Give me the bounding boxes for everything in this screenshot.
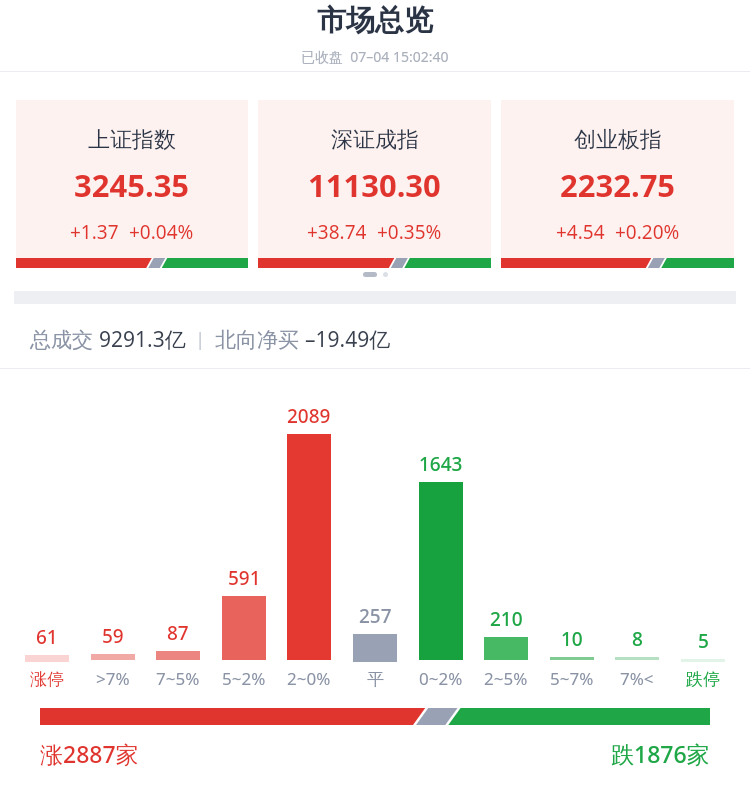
staticText: 2089	[287, 403, 331, 429]
staticText: +0.04%	[129, 219, 194, 245]
staticText: |	[186, 327, 215, 352]
staticText: +0.35%	[377, 219, 442, 245]
button[interactable]: 2089	[278, 403, 340, 690]
staticText: 跌停	[686, 669, 720, 690]
button[interactable]: 8	[606, 626, 668, 690]
staticText: 210	[490, 606, 523, 632]
button[interactable]: 1643	[410, 451, 472, 690]
staticText: 1643	[419, 451, 463, 477]
staticText: 0~2%	[419, 667, 463, 690]
button[interactable]: 257	[344, 603, 406, 690]
staticText: +4.54	[556, 219, 605, 245]
staticText: 7~5%	[156, 667, 200, 690]
staticText: +0.20%	[615, 219, 680, 245]
staticText: 11130.30	[308, 164, 441, 206]
staticText: 涨停	[30, 669, 64, 690]
staticText: 已收盘 07–04 15:02:40	[301, 47, 449, 66]
staticText: 3245.35	[74, 164, 190, 206]
button[interactable]: 210	[475, 606, 537, 690]
staticText: 市场总览	[317, 2, 433, 39]
staticText: 创业板指	[574, 126, 662, 154]
button[interactable]: 59	[82, 623, 144, 690]
staticText: 上证指数	[88, 126, 176, 154]
staticText: 61	[36, 624, 58, 650]
button[interactable]: 61	[16, 624, 78, 690]
staticText: 深证成指	[331, 126, 419, 154]
staticText: 总成交	[30, 325, 99, 354]
staticText: 跌1876家	[611, 738, 710, 769]
staticText: +38.74	[307, 219, 367, 245]
button[interactable]: 总成交	[0, 310, 750, 368]
staticText: 涨2887家	[40, 738, 139, 769]
button[interactable]: 87	[147, 620, 209, 690]
staticText: 5	[698, 628, 709, 654]
button[interactable]: 上证指数	[16, 100, 248, 268]
staticText: 北向净买	[215, 325, 305, 354]
staticText: 平	[367, 669, 384, 690]
button[interactable]: 5	[672, 628, 734, 690]
button[interactable]: 创业板指	[501, 100, 734, 268]
staticText: 5~2%	[222, 667, 266, 690]
staticText: 87	[167, 620, 189, 646]
staticText: 8	[632, 626, 643, 652]
staticText: >7%	[96, 667, 130, 690]
staticText: 591	[228, 565, 261, 591]
staticText: 257	[359, 603, 392, 629]
staticText: 2232.75	[560, 164, 676, 206]
staticText: 59	[102, 623, 124, 649]
staticText: 5~7%	[550, 667, 594, 690]
staticText: 2~0%	[287, 667, 331, 690]
staticText: –19.49亿	[305, 325, 391, 354]
staticText: 10	[561, 626, 583, 652]
button[interactable]: 深证成指	[258, 100, 491, 268]
staticText: 9291.3亿	[99, 325, 186, 354]
staticText: 2~5%	[484, 667, 528, 690]
staticText: +1.37	[70, 219, 119, 245]
button[interactable]: 591	[213, 565, 275, 690]
button[interactable]: 10	[541, 626, 603, 690]
staticText: 7%<	[620, 667, 654, 690]
